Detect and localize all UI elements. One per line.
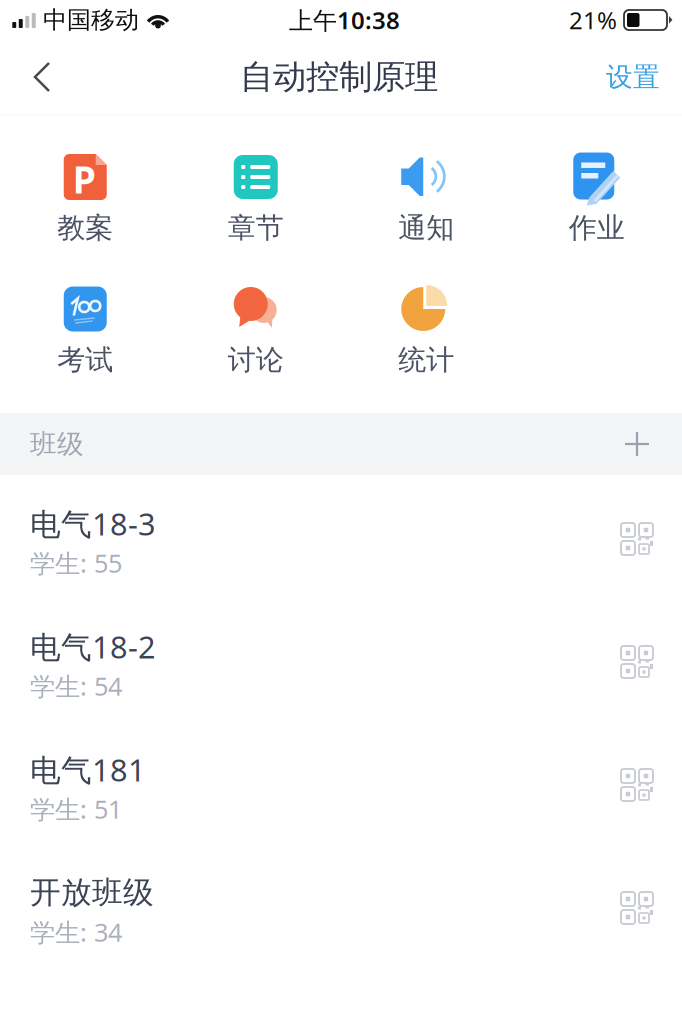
staticText: 设置 — [606, 61, 660, 93]
staticText: 学生: 54 — [30, 669, 122, 703]
staticText: 学生: 55 — [30, 546, 122, 580]
button[interactable]: 作业 — [511, 155, 682, 240]
button[interactable]: P — [0, 155, 170, 240]
staticText: 班级 — [30, 428, 84, 460]
button[interactable]: 考试 — [0, 287, 170, 372]
staticText: 自动控制原理 — [240, 56, 438, 97]
staticText: 21% — [569, 4, 617, 36]
button[interactable]: 通知 — [341, 155, 511, 240]
button[interactable]: 返回 — [14, 40, 70, 114]
staticText: 通知 — [398, 211, 454, 245]
staticText: 考试 — [57, 343, 113, 377]
button[interactable]: 章节 — [170, 155, 341, 240]
button[interactable]: 设置 — [602, 40, 664, 114]
button[interactable]: 讨论 — [170, 287, 341, 372]
staticText: 讨论 — [228, 343, 284, 377]
button[interactable]: 电气18-3 — [0, 475, 682, 598]
staticText: 电气181 — [30, 749, 146, 790]
button[interactable]: 电气181 — [0, 721, 682, 844]
staticText: 作业 — [569, 211, 625, 245]
staticText: 电气18-2 — [30, 626, 156, 667]
button[interactable]: 统计 — [341, 287, 511, 372]
staticText: P — [73, 154, 96, 204]
button[interactable]: 开放班级 — [0, 844, 682, 967]
staticText: 统计 — [398, 343, 454, 377]
staticText: 开放班级 — [30, 874, 154, 911]
button[interactable]: 添加班级 — [614, 421, 660, 467]
staticText: 电气18-3 — [30, 503, 156, 544]
staticText: 教案 — [57, 211, 113, 245]
staticText: 章节 — [228, 211, 284, 245]
staticText: 学生: 34 — [30, 915, 122, 949]
button[interactable]: 电气18-2 — [0, 598, 682, 721]
staticText: 中国移动 — [43, 5, 139, 35]
staticText: 学生: 51 — [30, 792, 122, 826]
staticText: 上午10:38 — [289, 4, 400, 36]
